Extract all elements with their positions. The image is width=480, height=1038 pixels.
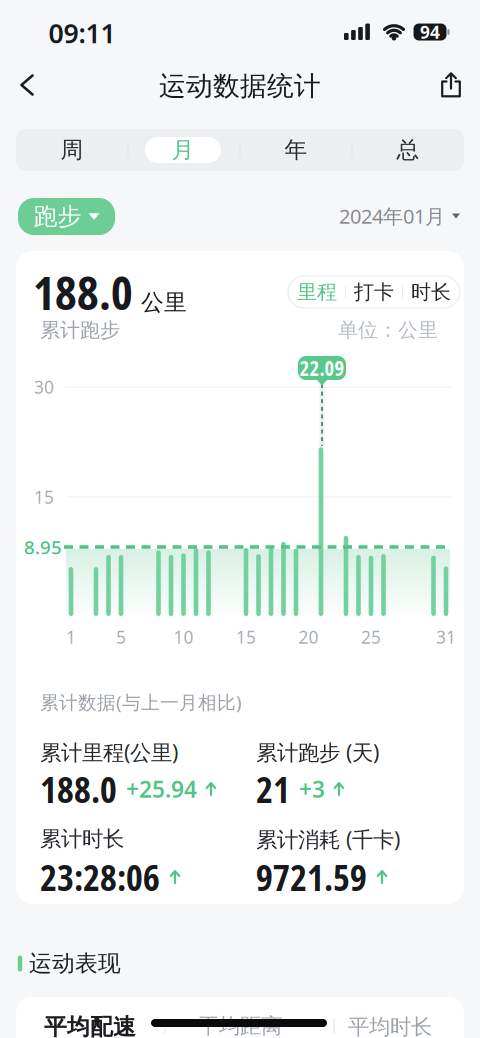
staticText: 20 xyxy=(298,625,318,648)
staticText: 22.09 xyxy=(299,354,344,382)
staticText: 平均距离 xyxy=(198,1013,282,1038)
staticText: 打卡 xyxy=(354,280,394,304)
staticText: 总 xyxy=(396,136,419,164)
staticText: +3 xyxy=(299,774,325,804)
staticText: 1 xyxy=(66,625,76,648)
button[interactable]: 年 xyxy=(246,132,346,168)
button[interactable]: 跑步 xyxy=(18,198,115,235)
staticText: 25 xyxy=(361,625,381,648)
button[interactable]: 月 xyxy=(145,136,221,164)
button[interactable]: 平均配速 xyxy=(30,1008,150,1038)
staticText: 188.0 xyxy=(40,764,117,813)
staticText: 30 xyxy=(34,375,54,398)
button[interactable]: Back xyxy=(8,62,46,108)
button[interactable]: 打卡 xyxy=(346,277,402,307)
staticText: 10 xyxy=(173,625,193,648)
button[interactable]: 平均时长 xyxy=(330,1008,450,1038)
staticText: 运动表现 xyxy=(29,950,121,977)
staticText: 累计跑步 (天) xyxy=(256,738,379,766)
staticText: 94 xyxy=(420,20,440,43)
staticText: 年 xyxy=(284,136,307,164)
staticText: 23:28:06 xyxy=(40,852,160,901)
staticText: 15 xyxy=(236,625,256,648)
staticText: 平均配速 xyxy=(44,1013,136,1038)
staticText: 31 xyxy=(436,625,456,648)
staticText: 累计消耗 (千卡) xyxy=(256,825,400,853)
button[interactable]: 周 xyxy=(22,132,122,168)
staticText: 单位：公里 xyxy=(338,318,438,342)
staticText: +25.94 xyxy=(126,774,197,804)
staticText: 9721.59 xyxy=(256,852,367,901)
staticText: 周 xyxy=(60,136,83,164)
staticText: 运动数据统计 xyxy=(159,70,321,102)
staticText: 累计时长 xyxy=(40,826,124,852)
staticText: 2024年01月 xyxy=(339,203,445,229)
staticText: 21 xyxy=(256,764,290,813)
staticText: 时长 xyxy=(411,280,451,304)
staticText: 累计数据(与上一月相比) xyxy=(40,690,242,714)
button[interactable]: 里程 xyxy=(289,277,345,307)
staticText: 09:11 xyxy=(48,15,115,51)
staticText: 平均时长 xyxy=(348,1014,432,1038)
button[interactable]: Share xyxy=(431,62,471,107)
staticText: 里程 xyxy=(297,280,337,304)
button[interactable]: 总 xyxy=(358,132,458,168)
button[interactable]: 2024年01月 xyxy=(320,199,460,233)
button[interactable]: 平均距离 xyxy=(180,1007,300,1038)
staticText: 188.0 xyxy=(33,260,133,324)
staticText: 8.95 xyxy=(24,535,62,559)
staticText: 跑步 xyxy=(33,202,81,231)
staticText: 15 xyxy=(34,485,54,508)
staticText: 公里 xyxy=(141,289,187,316)
staticText: 累计里程(公里) xyxy=(40,738,178,766)
staticText: 月 xyxy=(171,136,194,164)
staticText: 5 xyxy=(116,625,126,648)
button[interactable]: 时长 xyxy=(403,277,459,307)
staticText: 累计跑步 xyxy=(40,318,120,342)
